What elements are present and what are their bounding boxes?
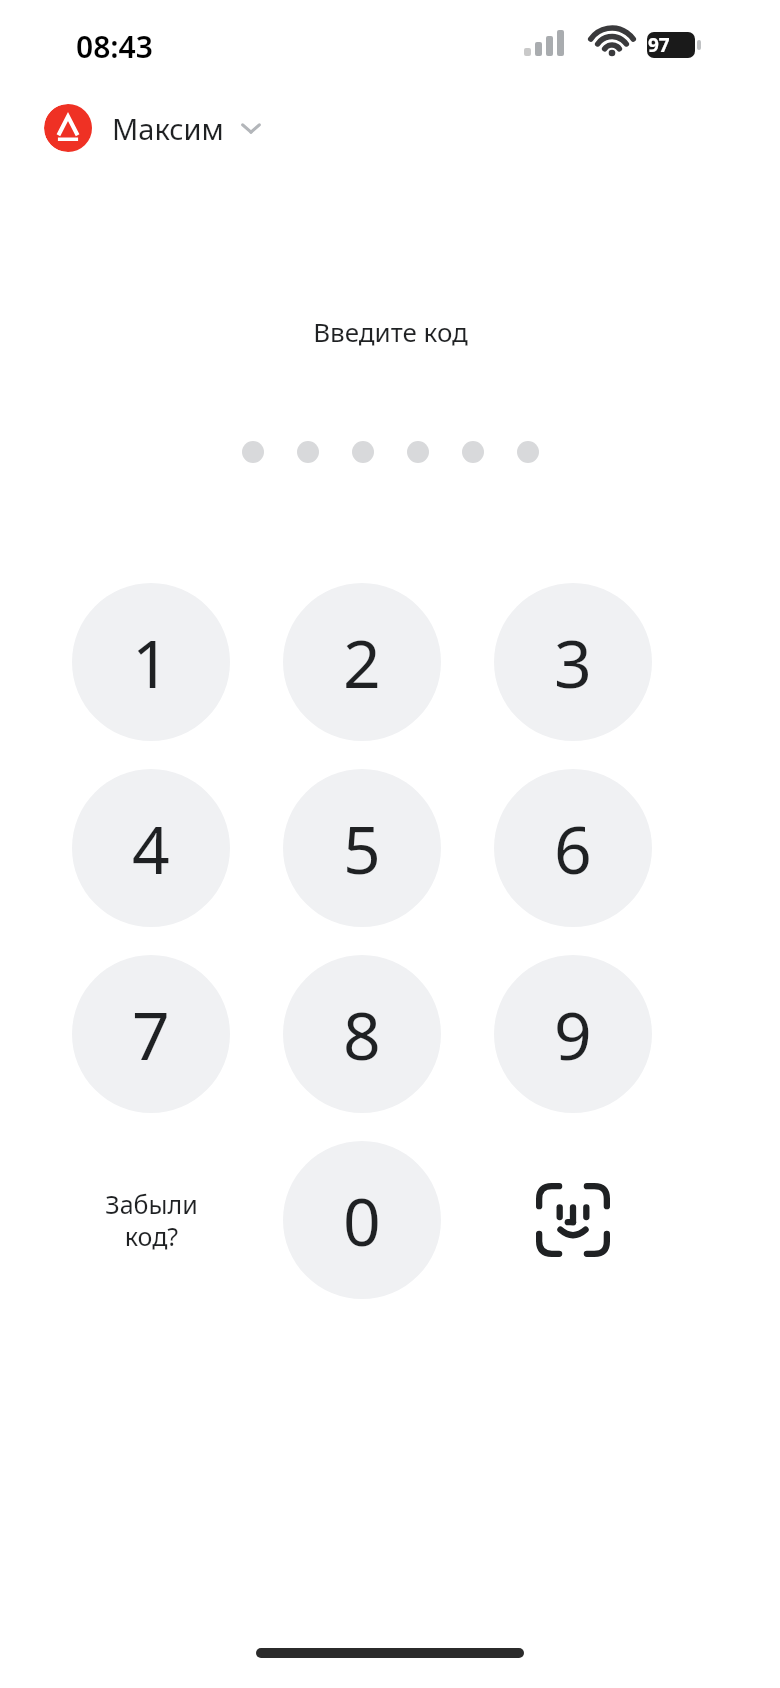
staticText: 6 (554, 803, 592, 893)
staticText: 1 (132, 617, 170, 707)
button[interactable]: 9 (494, 955, 652, 1113)
staticText: Забыли код? (105, 1187, 198, 1253)
button[interactable]: 8 (283, 955, 441, 1113)
staticText: 0 (343, 1175, 381, 1265)
staticText: Максим (112, 109, 224, 148)
button[interactable]: 0 (283, 1141, 441, 1299)
staticText: 2 (343, 617, 381, 707)
staticText: 8 (343, 989, 381, 1079)
staticText: 3 (554, 617, 592, 707)
button[interactable]: 5 (283, 769, 441, 927)
staticText: 97 (648, 32, 670, 58)
button[interactable]: 6 (494, 769, 652, 927)
staticText: 5 (343, 803, 381, 893)
staticText: 7 (132, 989, 170, 1079)
staticText: 9 (554, 989, 592, 1079)
button[interactable]: 4 (72, 769, 230, 927)
button[interactable]: 7 (72, 955, 230, 1113)
button[interactable]: Face ID (494, 1141, 652, 1299)
button[interactable]: Забыли код? (72, 1141, 230, 1299)
staticText: Введите код (313, 314, 468, 349)
button[interactable]: 2 (283, 583, 441, 741)
button[interactable]: Максим (44, 104, 272, 152)
staticText: 08:43 (76, 26, 153, 67)
staticText: 4 (132, 803, 170, 893)
button[interactable]: 1 (72, 583, 230, 741)
button[interactable]: 3 (494, 583, 652, 741)
